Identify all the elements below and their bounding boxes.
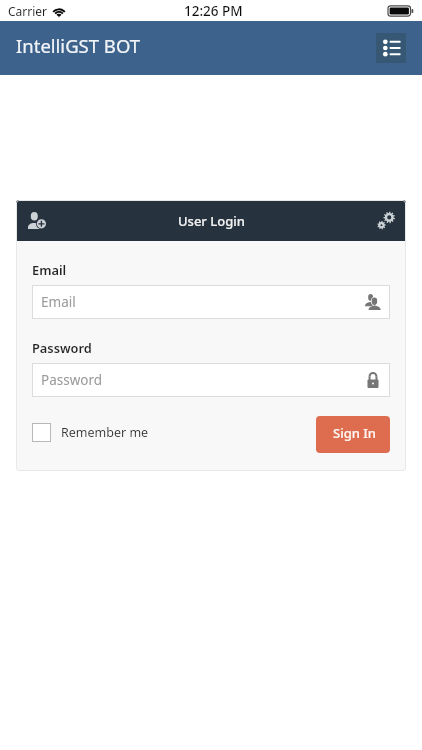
button[interactable]: Email field bbox=[32, 285, 390, 319]
staticText: Password bbox=[32, 339, 92, 356]
button[interactable]: Sign In bbox=[316, 416, 390, 453]
button[interactable]: Add user bbox=[16, 200, 57, 241]
staticText: Email bbox=[32, 261, 67, 278]
button[interactable]: Password field bbox=[32, 363, 390, 397]
staticText: User Login bbox=[178, 212, 245, 230]
staticText: Carrier bbox=[8, 3, 48, 19]
staticText: Sign In bbox=[333, 424, 377, 442]
button[interactable]: Settings bbox=[365, 200, 406, 241]
staticText: Password bbox=[41, 371, 103, 389]
staticText: 12:26 PM bbox=[184, 2, 243, 20]
staticText: Email bbox=[41, 293, 76, 311]
button[interactable]: Menu bbox=[376, 33, 406, 63]
staticText: Remember me bbox=[61, 424, 149, 441]
staticText: IntelliGST BOT bbox=[16, 33, 141, 58]
button[interactable]: Remember me bbox=[32, 423, 149, 442]
